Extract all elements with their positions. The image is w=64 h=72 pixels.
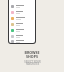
button[interactable] [9, 9, 35, 15]
staticText: SELECT YOUR FAVORITES [24, 60, 41, 66]
button[interactable] [9, 21, 35, 27]
button[interactable] [9, 3, 35, 9]
button[interactable] [9, 15, 35, 21]
button[interactable] [9, 33, 35, 39]
staticText: BROWSE SHOPS [24, 50, 40, 59]
button[interactable] [9, 27, 35, 33]
button[interactable] [9, 39, 35, 43]
